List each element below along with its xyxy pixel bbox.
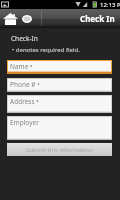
staticText: Employer	[10, 118, 39, 127]
button[interactable]: Submit this information	[7, 143, 112, 156]
button[interactable]: Home	[1, 9, 19, 28]
staticText: Phone # •	[10, 80, 40, 89]
staticText: Check In	[80, 13, 115, 24]
staticText: 12:13 PM	[100, 1, 120, 9]
staticText: Name •	[10, 62, 33, 71]
button[interactable]: Employer	[7, 116, 112, 140]
staticText: Address •	[10, 97, 39, 106]
button[interactable]: App logo	[19, 9, 35, 28]
button[interactable]: Address •	[7, 95, 112, 113]
button[interactable]: Name •	[7, 60, 112, 74]
staticText: • denotes required field.	[12, 46, 80, 54]
button[interactable]: Phone # •	[7, 78, 112, 92]
staticText: Submit this information	[26, 146, 93, 154]
staticText: Check-In	[11, 34, 38, 43]
